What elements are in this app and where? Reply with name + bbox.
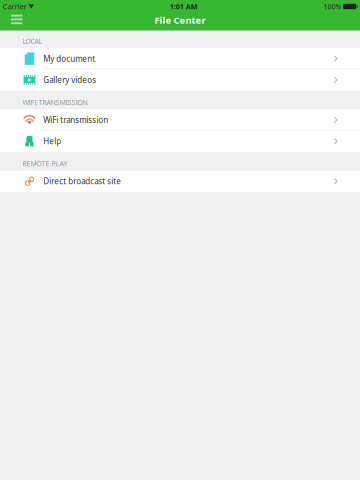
staticText: WiFi transmission xyxy=(43,114,108,125)
staticText: WIFI TRANSMISSION xyxy=(22,98,87,107)
button[interactable]: My document xyxy=(0,48,360,69)
staticText: LOCAL xyxy=(22,36,42,46)
staticText: File Center xyxy=(154,14,205,26)
staticText: 1:01 AM xyxy=(170,2,198,11)
staticText: Carrier xyxy=(3,2,27,11)
staticText: REMOTE PLAY xyxy=(22,159,67,168)
button[interactable]: Gallery videos xyxy=(0,69,360,91)
button[interactable]: WiFi transmission xyxy=(0,109,360,131)
button[interactable]: Menu xyxy=(5,11,28,32)
staticText: Help xyxy=(43,136,61,147)
button[interactable]: Direct broadcast site xyxy=(0,171,360,192)
staticText: Direct broadcast site xyxy=(43,176,121,187)
staticText: Gallery videos xyxy=(43,74,96,85)
staticText: 100% xyxy=(324,2,342,11)
staticText: My document xyxy=(43,53,95,64)
button[interactable]: Help xyxy=(0,131,360,152)
